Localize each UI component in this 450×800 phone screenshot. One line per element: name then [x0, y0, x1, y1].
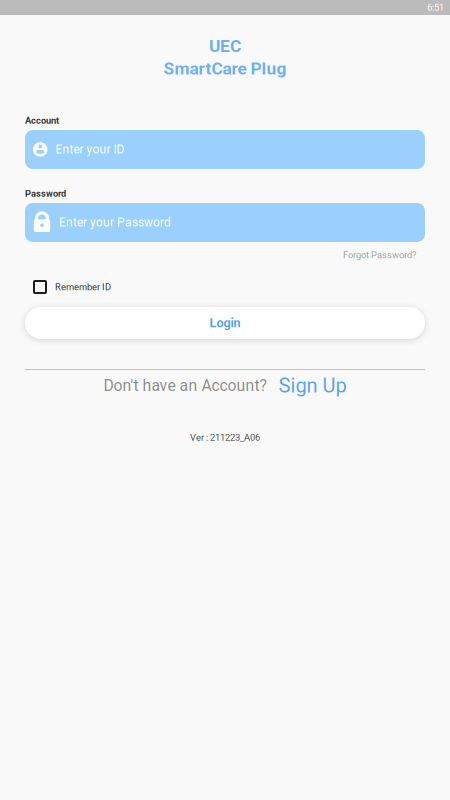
button[interactable]: Sign Up: [278, 374, 346, 397]
staticText: Remember ID: [55, 281, 111, 292]
staticText: Password: [25, 188, 66, 199]
staticText: SmartCare Plug: [163, 58, 286, 79]
staticText: Ver : 211223_A06: [190, 432, 260, 443]
staticText: Enter your ID: [55, 142, 124, 157]
staticText: UEC: [209, 36, 241, 56]
button[interactable]: Login: [25, 307, 425, 339]
staticText: Login: [209, 316, 240, 330]
button[interactable]: Remember ID: [34, 279, 214, 295]
staticText: Enter your Password: [59, 215, 171, 230]
staticText: 6:51: [427, 2, 444, 13]
staticText: Account: [25, 115, 59, 126]
staticText: Forgot Password?: [343, 249, 416, 260]
staticText: Don't have an Account?: [103, 376, 266, 395]
staticText: Sign Up: [278, 374, 346, 397]
button[interactable]: Forgot Password?: [25, 248, 416, 262]
